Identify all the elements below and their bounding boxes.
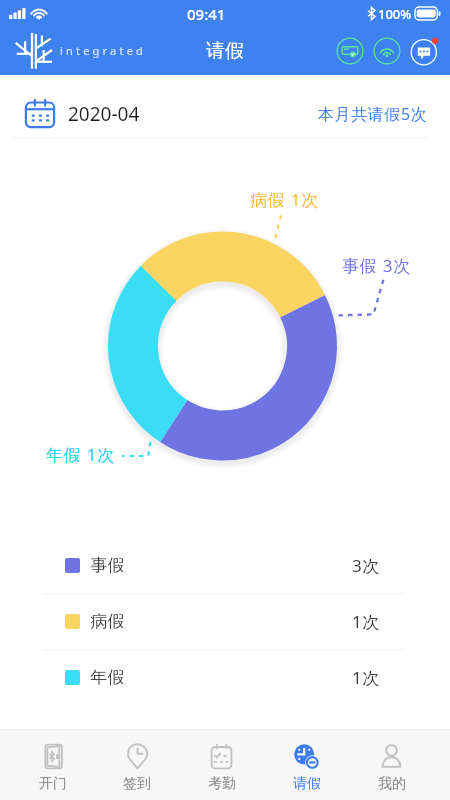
staticText: 开门 (39, 775, 67, 793)
staticText: 事假 3次 (342, 254, 412, 277)
staticText: 09:41 (187, 4, 226, 24)
button[interactable]: 签到 (95, 730, 179, 800)
button[interactable]: 我的 (349, 730, 434, 800)
staticText: 请假 (293, 775, 321, 793)
button[interactable]: 开门 (11, 730, 95, 800)
button[interactable]: Messages (410, 36, 440, 66)
staticText: 1次 (352, 610, 380, 633)
staticText: 100% (378, 5, 412, 23)
staticText: 本月共请假5次 (318, 103, 428, 125)
button[interactable]: Device status (336, 37, 364, 65)
staticText: 年假 1次 (46, 443, 116, 466)
button[interactable]: 病假 (0, 594, 450, 649)
button[interactable]: 2020-04 (0, 75, 450, 137)
button[interactable]: 年假 (0, 650, 450, 705)
button[interactable]: 考勤 (179, 730, 264, 800)
staticText: 我的 (378, 775, 406, 793)
staticText: 病假 (90, 611, 125, 632)
staticText: 年假 (90, 667, 125, 688)
staticText: 3次 (352, 554, 380, 577)
staticText: 考勤 (208, 775, 236, 793)
staticText: 事假 (90, 555, 125, 576)
button[interactable]: Network (373, 37, 401, 65)
staticText: 1次 (352, 666, 380, 689)
staticText: 病假 1次 (250, 188, 320, 211)
staticText: 签到 (123, 775, 151, 793)
staticText: 请假 (206, 39, 244, 63)
staticText: integrated (60, 43, 147, 58)
staticText: 2020-04 (68, 101, 140, 127)
button[interactable]: 事假 (0, 538, 450, 593)
button[interactable]: 请假 (264, 730, 349, 800)
